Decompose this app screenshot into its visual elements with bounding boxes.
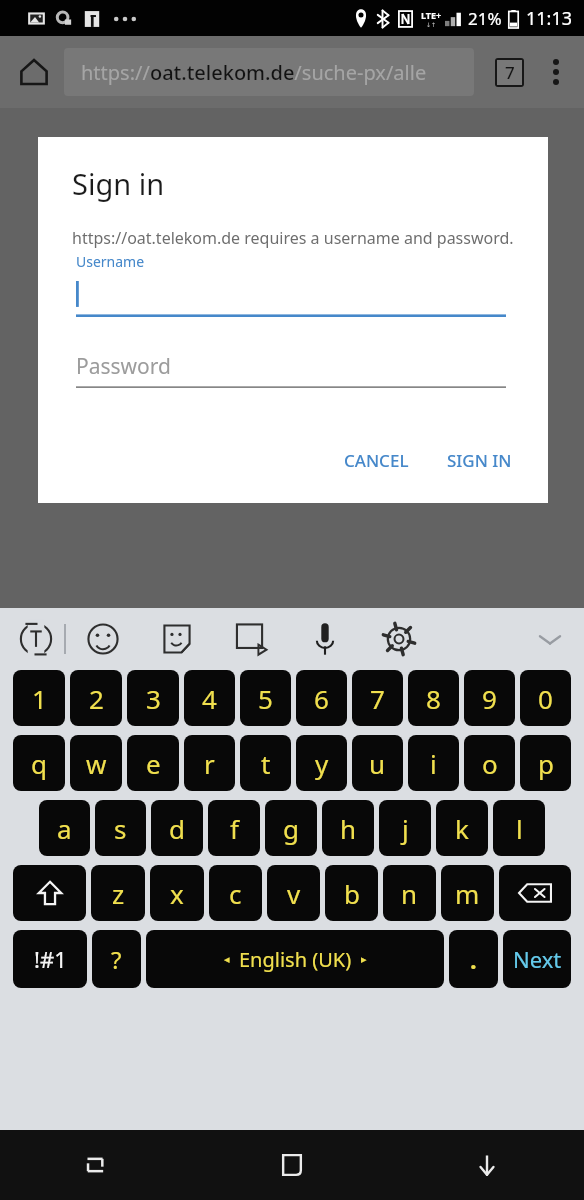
staticText: 1 xyxy=(32,681,47,716)
button[interactable]: c xyxy=(209,865,262,921)
staticText: s xyxy=(114,811,127,846)
button[interactable]: x xyxy=(150,865,204,921)
staticText: 3 xyxy=(146,681,161,716)
button[interactable]: y xyxy=(296,735,347,791)
staticText: https://oat.telekom.de/suche-px/alle xyxy=(81,59,427,86)
button[interactable]: Home page xyxy=(8,46,60,98)
button[interactable]: Recent apps xyxy=(0,1130,194,1200)
button[interactable]: 8 xyxy=(408,670,459,726)
staticText: n xyxy=(401,876,418,911)
button[interactable]: m xyxy=(441,865,494,921)
staticText: k xyxy=(455,811,469,846)
button[interactable]: SIGN IN xyxy=(439,442,520,479)
button[interactable]: z xyxy=(91,865,145,921)
button[interactable]: Emoji xyxy=(66,611,140,667)
button[interactable]: 6 xyxy=(296,670,347,726)
staticText: q xyxy=(31,746,47,781)
button[interactable]: g xyxy=(265,800,317,856)
button[interactable]: 7 open tabs xyxy=(486,49,532,95)
button[interactable]: !#1 xyxy=(13,930,87,988)
staticText: e xyxy=(146,746,161,781)
button[interactable]: 3 xyxy=(127,670,179,726)
button[interactable]: Next xyxy=(503,930,571,988)
button[interactable]: Shift xyxy=(13,865,86,921)
staticText: d xyxy=(169,811,185,846)
staticText: i xyxy=(430,746,437,781)
staticText: o xyxy=(482,746,498,781)
button[interactable]: p xyxy=(520,735,571,791)
staticText: . xyxy=(470,943,477,976)
button[interactable]: Backspace xyxy=(499,865,571,921)
button[interactable]: v xyxy=(267,865,320,921)
staticText: ↓↑ xyxy=(426,21,437,28)
staticText: Sign in xyxy=(72,164,165,203)
staticText: Next xyxy=(513,944,562,974)
staticText: y xyxy=(315,746,329,781)
button[interactable]: 7 xyxy=(352,670,403,726)
staticText: c xyxy=(229,876,242,911)
button[interactable]: Home xyxy=(194,1130,389,1200)
staticText: b xyxy=(344,876,360,911)
button[interactable]: Stickers xyxy=(140,611,214,667)
button[interactable]: d xyxy=(151,800,203,856)
staticText: https://oat.telekom.de requires a userna… xyxy=(72,227,514,249)
staticText: !#1 xyxy=(34,944,67,974)
button[interactable]: t xyxy=(240,735,291,791)
staticText: z xyxy=(112,876,125,911)
button[interactable]: u xyxy=(352,735,403,791)
staticText: 2 xyxy=(89,681,104,716)
staticText: w xyxy=(86,746,107,781)
button[interactable]: 2 xyxy=(70,670,122,726)
button[interactable]: GIF xyxy=(214,611,288,667)
button[interactable]: q xyxy=(13,735,65,791)
button[interactable]: n xyxy=(383,865,436,921)
button[interactable]: 4 xyxy=(184,670,235,726)
button[interactable]: Hide keyboard xyxy=(389,1130,584,1200)
button[interactable]: CANCEL xyxy=(336,442,417,479)
staticText: 8 xyxy=(426,681,441,716)
staticText: SIGN IN xyxy=(447,449,512,472)
staticText: CANCEL xyxy=(344,449,409,472)
staticText: 6 xyxy=(314,681,329,716)
staticText: ▸ xyxy=(361,953,367,966)
staticText: ? xyxy=(111,943,122,976)
button[interactable]: h xyxy=(322,800,374,856)
button[interactable]: a xyxy=(39,800,90,856)
staticText: h xyxy=(340,811,357,846)
button[interactable]: r xyxy=(184,735,235,791)
button[interactable]: i xyxy=(408,735,459,791)
staticText: v xyxy=(287,876,301,911)
button[interactable]: . xyxy=(449,930,498,988)
button[interactable]: s xyxy=(95,800,146,856)
button[interactable]: Hide toolbar xyxy=(524,613,576,665)
button[interactable]: More options xyxy=(532,48,580,96)
staticText: Username xyxy=(76,252,145,271)
button[interactable]: Translate xyxy=(8,611,64,667)
staticText: 11:13 xyxy=(526,6,573,31)
staticText: 21% xyxy=(468,7,502,30)
staticText: j xyxy=(402,811,409,846)
button[interactable]: e xyxy=(127,735,179,791)
button[interactable]: 1 xyxy=(13,670,65,726)
staticText: 0 xyxy=(538,681,553,716)
button[interactable]: 5 xyxy=(240,670,291,726)
button[interactable]: ? xyxy=(92,930,141,988)
staticText: 7 xyxy=(505,61,515,84)
button[interactable]: 9 xyxy=(464,670,515,726)
button[interactable]: https://oat.telekom.de/suche-px/alle xyxy=(64,48,474,96)
button[interactable]: o xyxy=(464,735,515,791)
button[interactable]: b xyxy=(325,865,378,921)
staticText: p xyxy=(538,746,554,781)
button[interactable]: w xyxy=(70,735,122,791)
button[interactable]: f xyxy=(208,800,260,856)
button[interactable]: l xyxy=(493,800,545,856)
button[interactable]: Space, English (UK) xyxy=(146,930,444,988)
staticText: m xyxy=(455,876,480,911)
button[interactable]: k xyxy=(436,800,488,856)
staticText: 4 xyxy=(202,681,217,716)
button[interactable]: Keyboard settings xyxy=(362,611,436,667)
button[interactable]: j xyxy=(379,800,431,856)
button[interactable]: Voice input xyxy=(288,611,362,667)
button[interactable]: 0 xyxy=(520,670,571,726)
staticText: l xyxy=(516,811,523,846)
